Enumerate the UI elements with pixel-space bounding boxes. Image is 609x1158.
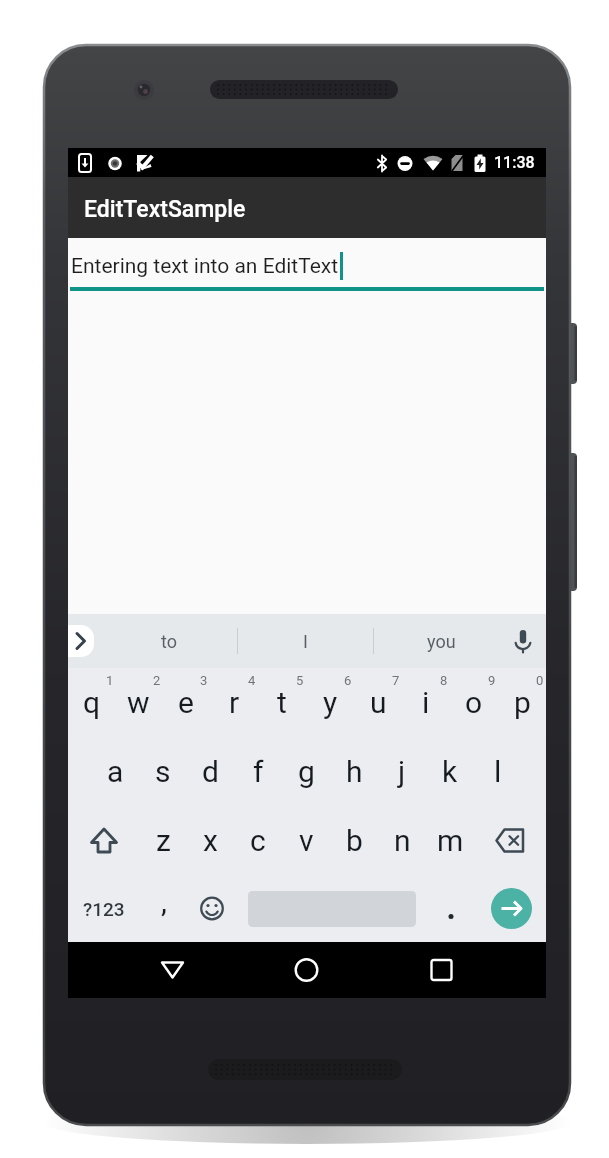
button[interactable]: you [374, 614, 509, 668]
button[interactable] [278, 952, 335, 988]
button[interactable] [427, 875, 475, 942]
staticText: 8 [440, 673, 448, 688]
staticText: a [107, 754, 124, 789]
staticText: 0 [536, 673, 544, 688]
button[interactable]: k [426, 737, 474, 806]
staticText: g [298, 754, 315, 789]
button[interactable] [68, 806, 140, 875]
staticText: you [427, 631, 456, 652]
staticText: h [346, 754, 363, 789]
button[interactable]: s [139, 737, 186, 806]
button[interactable]: d [186, 737, 234, 806]
button[interactable]: g [282, 737, 330, 806]
staticText: , [161, 884, 167, 919]
button[interactable] [68, 625, 94, 657]
button[interactable]: y [306, 668, 354, 737]
staticText: b [346, 823, 363, 858]
button[interactable]: v [282, 806, 330, 875]
staticText: 6 [344, 673, 352, 688]
button[interactable] [236, 875, 427, 942]
button[interactable]: ?123 [68, 875, 140, 942]
staticText: p [514, 685, 531, 720]
staticText: r [229, 685, 240, 720]
button[interactable]: u [354, 668, 402, 737]
staticText: e [178, 685, 194, 720]
button[interactable] [413, 952, 470, 988]
staticText: 1 [106, 673, 114, 688]
staticText: n [394, 823, 411, 858]
staticText: EditTextSample [84, 196, 246, 223]
button[interactable]: p [498, 668, 546, 737]
staticText: 11:38 [494, 153, 535, 172]
staticText: ?123 [83, 898, 125, 920]
staticText: to [161, 631, 177, 652]
button[interactable]: b [330, 806, 378, 875]
staticText: t [277, 685, 287, 720]
button[interactable]: z [140, 806, 187, 875]
staticText: k [442, 754, 458, 789]
button[interactable]: i [402, 668, 450, 737]
staticText: l [494, 754, 502, 789]
staticText: v [299, 823, 314, 858]
staticText: 2 [153, 673, 161, 688]
staticText: q [83, 685, 101, 720]
staticText: z [156, 823, 171, 858]
staticText: w [127, 685, 150, 720]
button[interactable] [188, 875, 236, 942]
staticText: f [253, 754, 264, 789]
button[interactable]: j [378, 737, 426, 806]
staticText: 4 [248, 673, 256, 688]
staticText: x [203, 823, 218, 858]
staticText: o [465, 685, 483, 720]
staticText: s [155, 754, 171, 789]
button[interactable]: l [474, 737, 522, 806]
button[interactable]: t [258, 668, 306, 737]
button[interactable]: Entering text into an EditText [68, 238, 546, 614]
button[interactable] [144, 952, 201, 988]
button[interactable]: , [140, 875, 188, 942]
staticText: Entering text into an EditText [71, 254, 339, 279]
staticText: 5 [296, 673, 304, 688]
button[interactable]: o [450, 668, 498, 737]
button[interactable]: h [330, 737, 378, 806]
button[interactable]: m [426, 806, 474, 875]
button[interactable] [474, 806, 546, 875]
button[interactable]: w [115, 668, 162, 737]
button[interactable]: x [187, 806, 234, 875]
button[interactable]: q [68, 668, 115, 737]
button[interactable]: r [210, 668, 258, 737]
button[interactable]: f [234, 737, 282, 806]
staticText: 3 [200, 673, 208, 688]
staticText: y [323, 685, 338, 720]
button[interactable]: a [92, 737, 139, 806]
staticText: i [422, 685, 430, 720]
button[interactable] [500, 621, 546, 661]
button[interactable]: c [234, 806, 282, 875]
button[interactable]: n [378, 806, 426, 875]
button[interactable]: e [162, 668, 210, 737]
staticText: c [250, 823, 266, 858]
staticText: j [398, 754, 406, 789]
staticText: m [437, 823, 464, 858]
staticText: d [202, 754, 219, 789]
staticText: I [303, 631, 308, 652]
staticText: 9 [488, 673, 496, 688]
button[interactable] [475, 875, 546, 942]
staticText: 7 [392, 673, 400, 688]
button[interactable]: I [238, 614, 373, 668]
button[interactable]: to [101, 614, 237, 668]
staticText: u [370, 685, 387, 720]
